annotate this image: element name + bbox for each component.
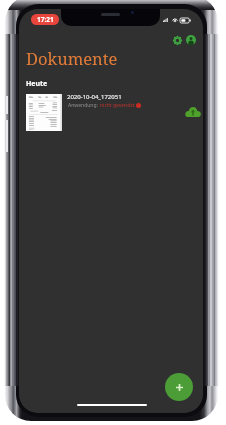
staticText: Heute xyxy=(26,79,48,89)
button[interactable]: 2020-10-04_172051 xyxy=(19,9,203,57)
staticText: Dokumente xyxy=(26,47,118,69)
button[interactable]: Account xyxy=(184,33,197,46)
staticText: 17:21 xyxy=(37,15,54,24)
staticText: Anwendung: xyxy=(68,102,100,109)
button[interactable]: Add document xyxy=(165,373,193,401)
staticText: nicht gesendet xyxy=(100,102,135,109)
button[interactable]: Settings xyxy=(171,34,184,47)
staticText: 2020-10-04_172051 xyxy=(67,93,122,101)
